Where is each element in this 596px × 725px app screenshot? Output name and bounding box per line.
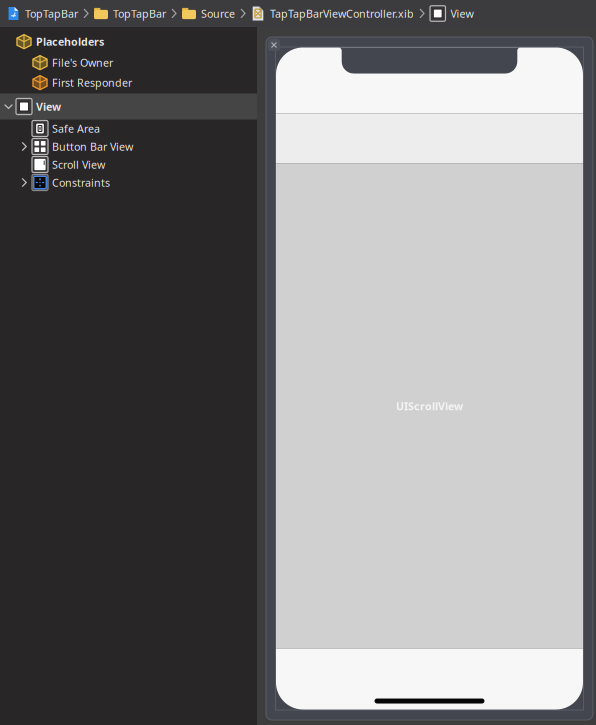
button[interactable]: Source: [182, 1, 235, 26]
staticText: UIScrollView: [396, 399, 463, 413]
button[interactable]: Safe Area: [0, 119, 257, 137]
staticText: View: [450, 6, 473, 21]
button[interactable]: TopTapBar: [7, 1, 78, 26]
staticText: Constraints: [52, 175, 110, 190]
button[interactable]: Constraints: [0, 173, 257, 191]
button[interactable]: View: [430, 1, 473, 26]
staticText: TopTapBar: [113, 6, 166, 21]
staticText: Placeholders: [36, 34, 104, 49]
button[interactable]: First Responder: [0, 73, 257, 91]
button[interactable]: Scroll View: [0, 155, 257, 173]
button[interactable]: Button Bar View: [0, 137, 257, 155]
staticText: TopTapBar: [25, 6, 78, 21]
staticText: TapTapBarViewController.xib: [270, 6, 414, 21]
staticText: Scroll View: [52, 157, 105, 172]
button[interactable]: View: [0, 93, 257, 119]
button[interactable]: TapTapBarViewController.xib: [251, 1, 414, 26]
button[interactable]: Placeholders: [0, 32, 257, 50]
button[interactable]: File's Owner: [0, 53, 257, 71]
staticText: Button Bar View: [52, 139, 133, 154]
staticText: Safe Area: [52, 121, 100, 136]
staticText: File's Owner: [52, 55, 113, 70]
staticText: View: [36, 99, 61, 114]
staticText: Source: [201, 6, 235, 21]
button[interactable]: Close: [268, 39, 280, 51]
staticText: First Responder: [52, 75, 132, 90]
button[interactable]: TopTapBar: [94, 1, 166, 26]
